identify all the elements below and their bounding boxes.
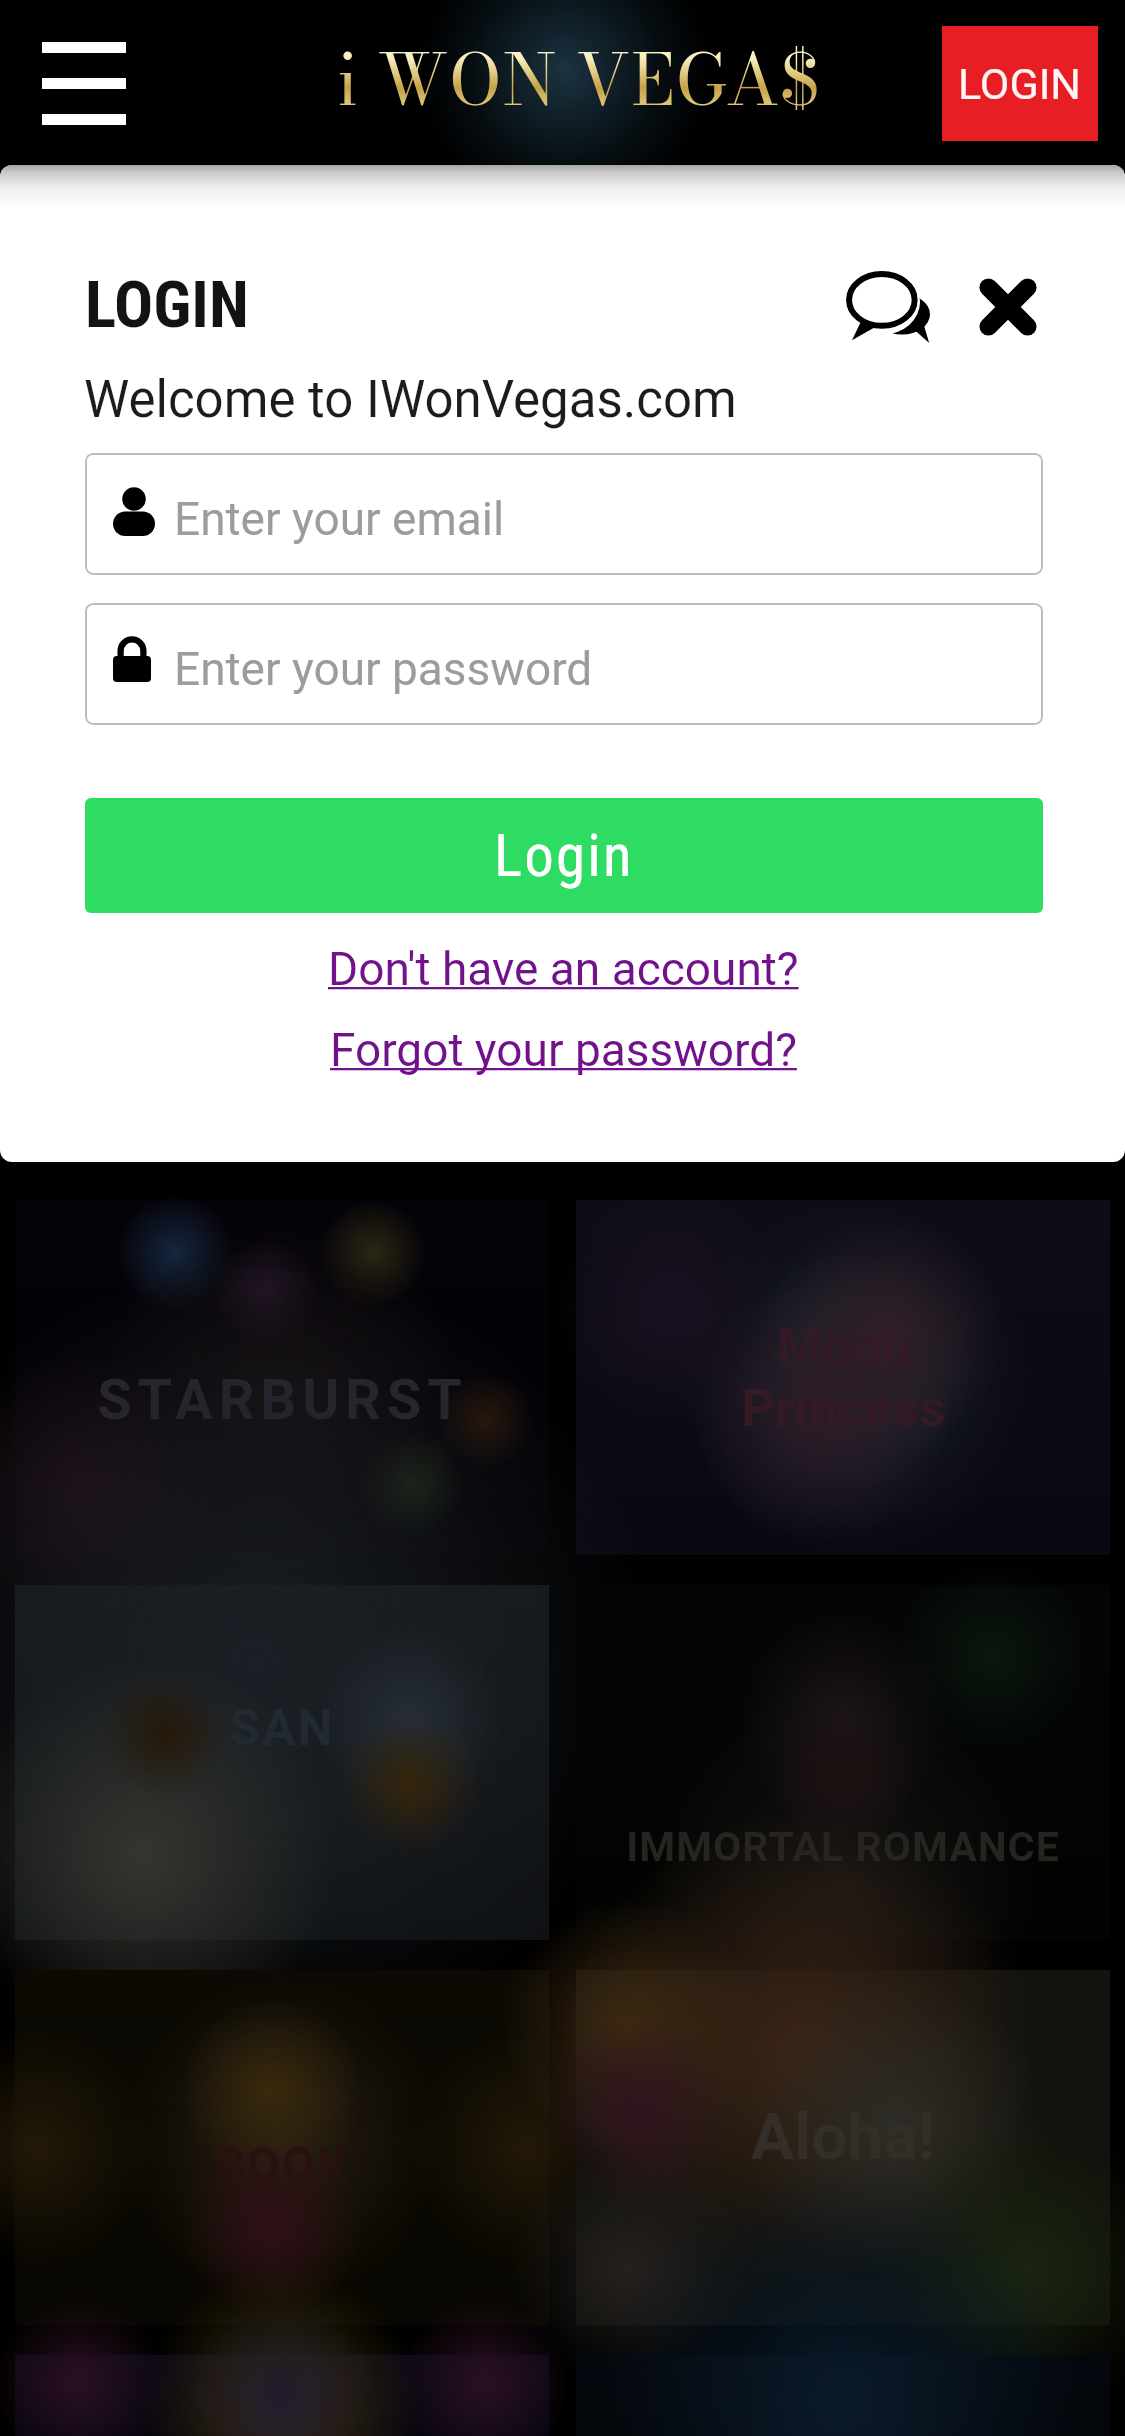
staticText: Enter your password (174, 642, 593, 696)
button[interactable]: Live chat (847, 273, 930, 343)
button[interactable]: STARBURST (15, 1200, 549, 1555)
staticText: SAN (229, 1699, 335, 1758)
staticText: i WON VEGA$ (337, 26, 821, 133)
staticText: LOGIN (85, 267, 249, 343)
staticText: Aloha! (751, 2100, 935, 2175)
staticText: Forgot your password? (330, 1023, 797, 1077)
staticText: STARBURST (97, 1367, 468, 1433)
staticText: Welcome to IWonVegas.com (84, 370, 737, 430)
button[interactable]: BOOK (15, 1970, 549, 2325)
staticText: IMMORTAL ROMANCE (626, 1823, 1060, 1871)
staticText: Enter your email (174, 492, 505, 546)
button[interactable]: Forgot your password? (325, 1017, 802, 1083)
staticText: Moon Princess (741, 1317, 946, 1439)
staticText: LOGIN (958, 59, 1082, 109)
button[interactable] (15, 2355, 549, 2436)
staticText: Don't have an account? (328, 942, 799, 996)
staticText: BOOK (214, 2136, 350, 2192)
button[interactable]: IMMORTAL ROMANCE (576, 1585, 1110, 1940)
button[interactable]: Menu (42, 42, 126, 126)
button[interactable]: SAN (15, 1585, 549, 1940)
button[interactable]: Don't have an account? (325, 936, 802, 1002)
button[interactable]: Login (85, 798, 1043, 913)
button[interactable]: Moon Princess (576, 1200, 1110, 1555)
staticText: Login (494, 821, 634, 890)
button[interactable]: Enter your password (85, 603, 1043, 725)
button[interactable]: Enter your email (85, 453, 1043, 575)
button[interactable]: LOGIN (942, 26, 1098, 141)
button[interactable]: Close (978, 277, 1038, 337)
button[interactable] (576, 2355, 1110, 2436)
button[interactable]: Aloha! (576, 1970, 1110, 2325)
